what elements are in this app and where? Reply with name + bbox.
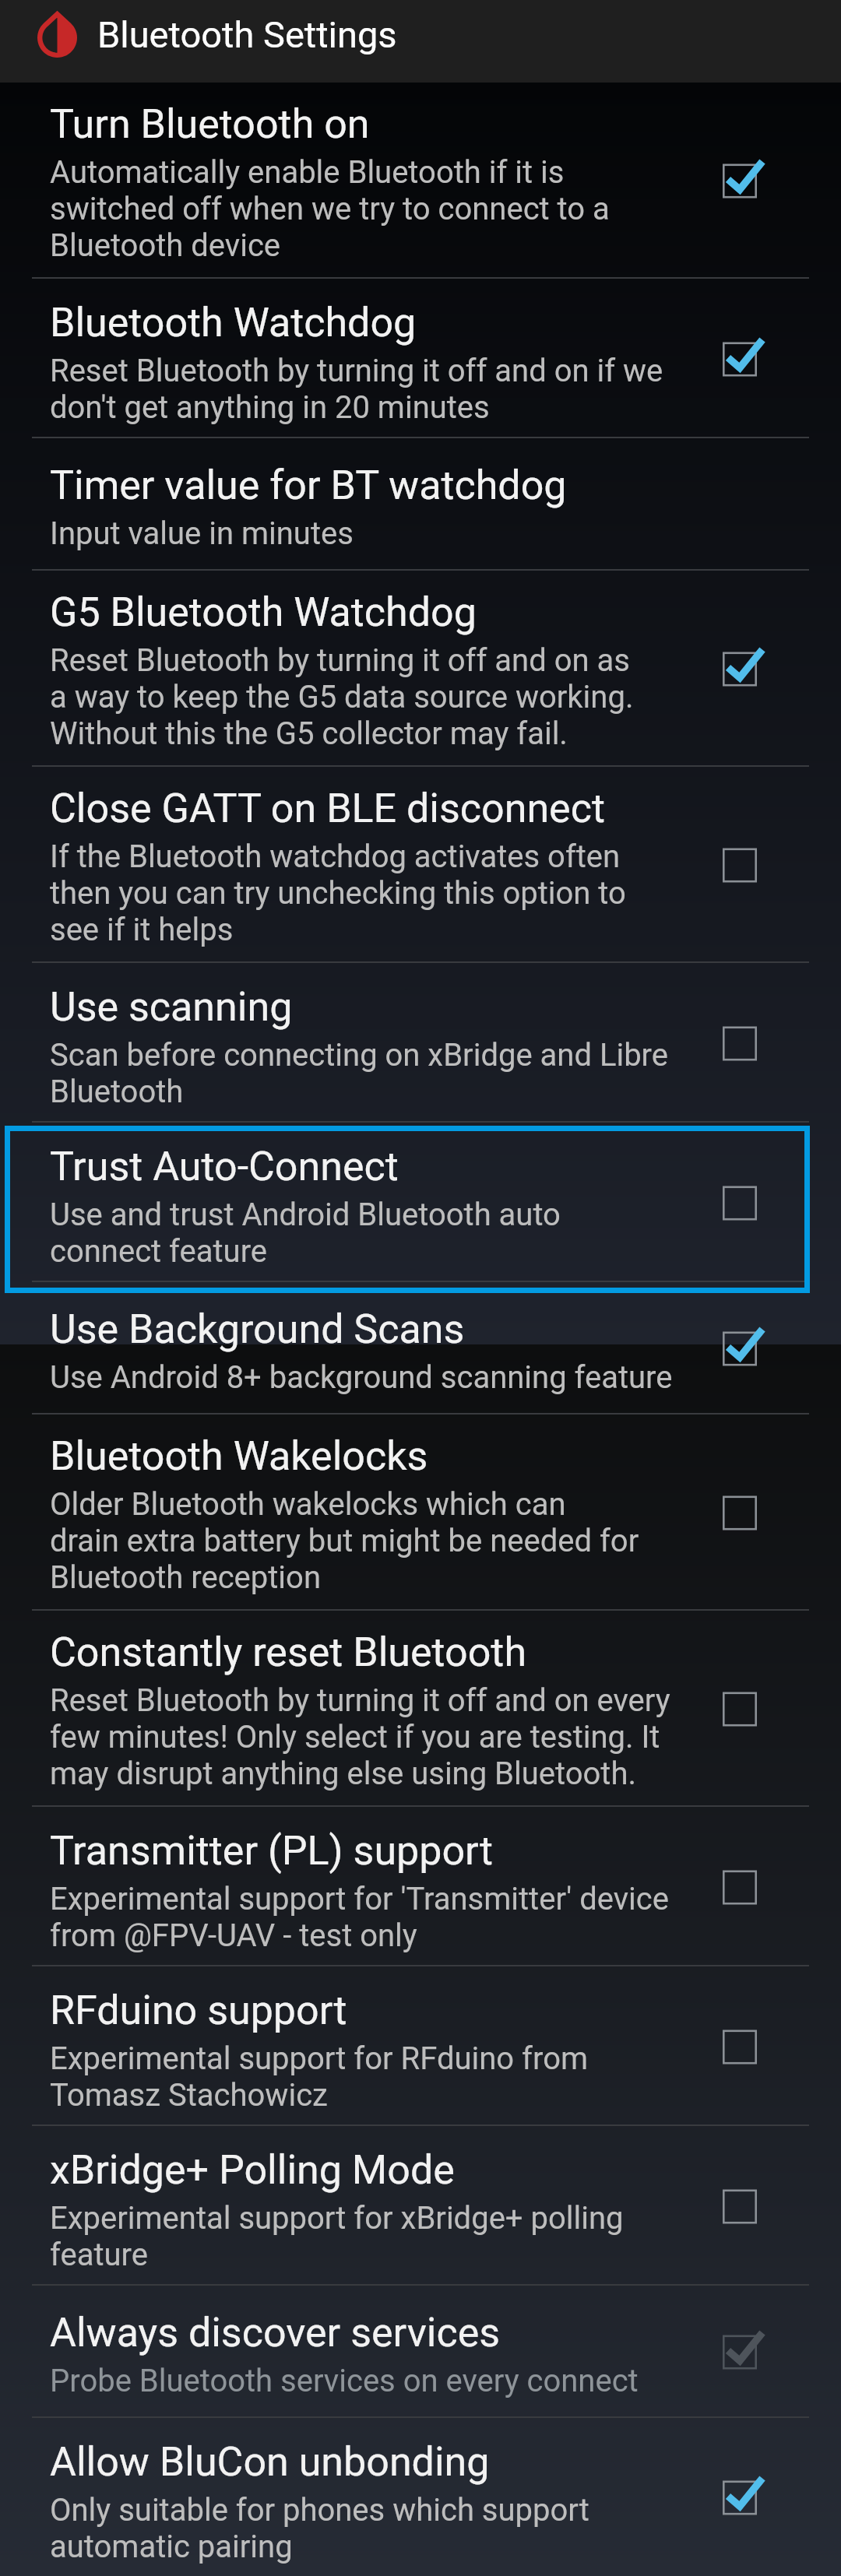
button[interactable]: Timer value for BT watchdog (0, 438, 841, 571)
staticText: Always discover services (50, 2309, 501, 2356)
staticText: Constantly reset Bluetooth (50, 1629, 527, 1676)
staticText: Timer value for BT watchdog (50, 462, 567, 509)
staticText: Use scanning (50, 983, 293, 1031)
button[interactable]: Use scanning (0, 963, 841, 1123)
staticText: Close GATT on BLE disconnect (50, 785, 605, 832)
staticText: G5 Bluetooth Watchdog (50, 589, 477, 636)
button[interactable]: Constantly reset Bluetooth (0, 1611, 841, 1807)
button[interactable]: Always discover services (0, 2286, 841, 2418)
staticText: Older Bluetooth wakelocks which can drai… (50, 1486, 639, 1596)
staticText: Input value in minutes (50, 515, 354, 552)
staticText: Use Android 8+ background scanning featu… (50, 1359, 673, 1396)
staticText: Bluetooth Wakelocks (50, 1432, 428, 1480)
staticText: If the Bluetooth watchdog activates ofte… (50, 838, 626, 948)
staticText: Scan before connecting on xBridge and Li… (50, 1037, 669, 1110)
staticText: Only suitable for phones which support a… (50, 2492, 589, 2565)
staticText: Turn Bluetooth on (50, 100, 370, 148)
staticText: Allow BluCon unbonding (50, 2438, 490, 2486)
staticText: Transmitter (PL) support (50, 1827, 494, 1875)
button[interactable]: Turn Bluetooth on (0, 83, 841, 279)
staticText: Use Background Scans (50, 1306, 465, 1353)
staticText: Experimental support for RFduino from To… (50, 2040, 589, 2114)
staticText: Reset Bluetooth by turning it off and on… (50, 1682, 670, 1792)
button[interactable]: G5 Bluetooth Watchdog (0, 571, 841, 767)
staticText: Experimental support for xBridge+ pollin… (50, 2200, 624, 2273)
staticText: Bluetooth Settings (97, 13, 397, 56)
button[interactable]: Close GATT on BLE disconnect (0, 767, 841, 963)
staticText: Reset Bluetooth by turning it off and on… (50, 642, 634, 752)
button[interactable]: xBridge+ Polling Mode (0, 2126, 841, 2286)
staticText: Trust Auto-Connect (50, 1143, 399, 1190)
button[interactable]: Transmitter (PL) support (0, 1807, 841, 1966)
staticText: Reset Bluetooth by turning it off and on… (50, 353, 663, 426)
button[interactable]: Trust Auto-Connect (0, 1123, 841, 1282)
staticText: Automatically enable Bluetooth if it is … (50, 154, 610, 264)
staticText: Probe Bluetooth services on every connec… (50, 2363, 639, 2399)
button[interactable]: RFduino support (0, 1966, 841, 2126)
staticText: xBridge+ Polling Mode (50, 2146, 455, 2194)
staticText: RFduino support (50, 1987, 347, 2034)
button[interactable]: Use Background Scans (0, 1282, 841, 1415)
staticText: Bluetooth Watchdog (50, 299, 417, 346)
button[interactable]: Bluetooth Watchdog (0, 279, 841, 438)
button[interactable]: Allow BluCon unbonding (0, 2418, 841, 2576)
staticText: Experimental support for 'Transmitter' d… (50, 1881, 669, 1954)
staticText: Use and trust Android Bluetooth auto con… (50, 1197, 561, 1270)
button[interactable]: Bluetooth Wakelocks (0, 1415, 841, 1611)
other: xDrip logo (37, 12, 77, 58)
